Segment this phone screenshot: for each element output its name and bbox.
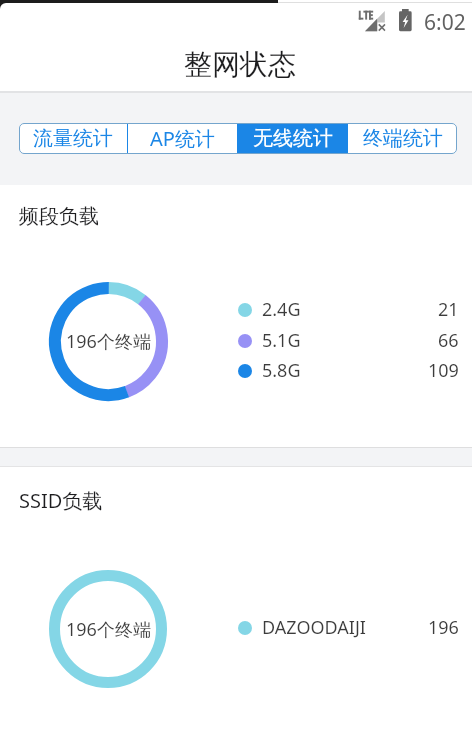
staticText: 196 [428, 615, 459, 640]
other: LTE signal, no service [358, 9, 385, 32]
staticText: 5.1G [262, 328, 301, 353]
staticText: 66 [438, 328, 459, 353]
staticText: 5.8G [262, 358, 301, 383]
staticText: DAZOODAIJI [262, 615, 366, 640]
staticText: 109 [428, 358, 459, 383]
other: Battery charging [399, 9, 412, 32]
staticText: 终端统计 [363, 126, 443, 151]
staticText: AP统计 [150, 125, 215, 152]
staticText: 196个终端 [66, 329, 151, 354]
staticText: 流量统计 [33, 126, 113, 151]
staticText: 21 [438, 297, 459, 322]
staticText: 2.4G [262, 297, 301, 322]
staticText: SSID负载 [19, 487, 103, 514]
staticText: 无线统计 [253, 126, 333, 151]
staticText: 整网状态 [184, 47, 296, 82]
button[interactable]: 终端统计 [348, 123, 457, 154]
staticText: 196个终端 [66, 617, 151, 642]
button[interactable]: AP统计 [128, 123, 237, 154]
staticText: 6:02 [424, 8, 466, 37]
staticText: 频段负载 [19, 204, 99, 229]
button[interactable]: 无线统计 [238, 123, 347, 154]
button[interactable]: 流量统计 [19, 123, 127, 154]
